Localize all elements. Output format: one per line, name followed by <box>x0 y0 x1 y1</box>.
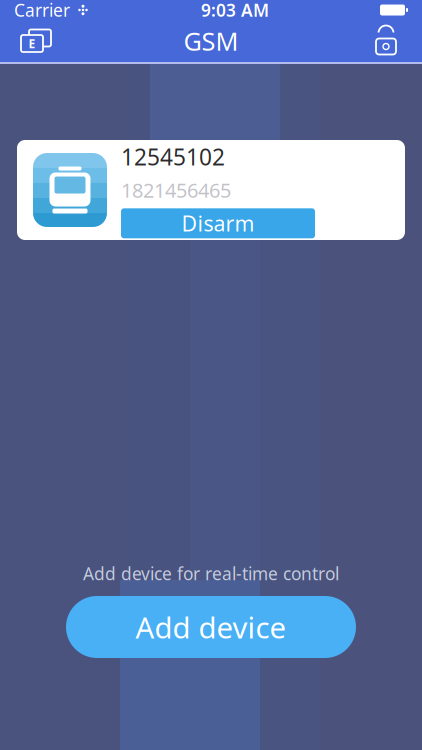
staticText: E <box>28 35 35 51</box>
staticText: 9:03 AM <box>201 0 269 21</box>
button[interactable]: Lock <box>358 20 414 62</box>
staticText: Add device for real-time control <box>83 562 339 585</box>
staticText: GSM <box>183 24 238 58</box>
button[interactable]: Add device <box>66 596 356 658</box>
staticText: Add device <box>135 607 286 646</box>
staticText: Carrier <box>14 0 70 21</box>
staticText: Disarm <box>181 209 254 237</box>
staticText: 12545102 <box>121 142 225 172</box>
staticText: 1821456465 <box>121 177 231 203</box>
button[interactable]: Devices <box>8 20 64 62</box>
button[interactable]: 12545102 <box>17 140 405 240</box>
button[interactable]: Disarm <box>121 208 315 238</box>
